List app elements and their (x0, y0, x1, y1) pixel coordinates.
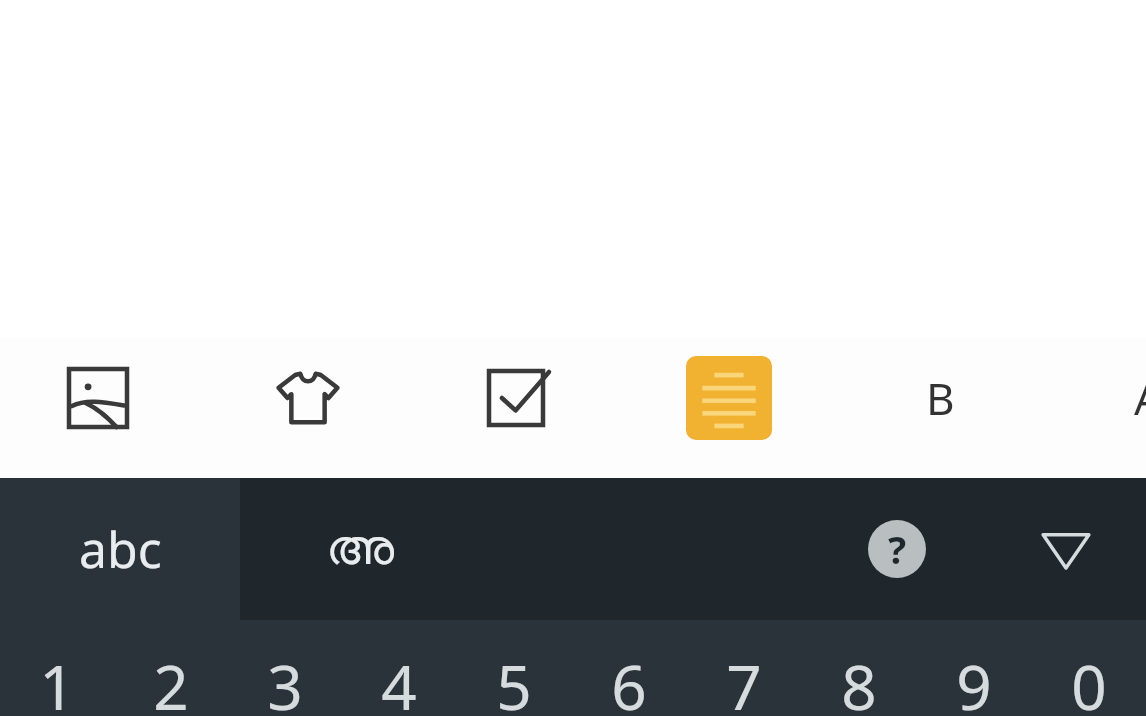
button[interactable]: 0 (1031, 620, 1146, 716)
staticText: abc (79, 515, 162, 583)
button[interactable]: 1 (0, 620, 114, 716)
staticText: 6 (611, 644, 647, 716)
staticText: 0 (1071, 644, 1107, 716)
button[interactable]: 3 (228, 620, 342, 716)
staticText: 4 (381, 644, 417, 716)
button[interactable]: 2 (114, 620, 228, 716)
button[interactable]: 5 (456, 620, 571, 716)
button[interactable]: abc (0, 478, 240, 620)
staticText: A (1134, 368, 1146, 428)
button[interactable]: 7 (686, 620, 801, 716)
staticText: 7 (726, 644, 762, 716)
button[interactable]: 8 (801, 620, 916, 716)
staticText: 3 (267, 644, 303, 716)
button[interactable]: 4 (342, 620, 456, 716)
button[interactable]: Checklist (466, 346, 570, 450)
staticText: 8 (841, 644, 877, 716)
button[interactable]: Stickers (256, 346, 360, 450)
button[interactable]: Hide keyboard (1034, 526, 1098, 574)
button[interactable]: അ (280, 478, 440, 620)
staticText: 9 (956, 644, 992, 716)
button[interactable]: 9 (916, 620, 1031, 716)
staticText: 1 (39, 644, 75, 716)
button[interactable]: Text note (677, 346, 781, 450)
staticText: ? (888, 523, 907, 575)
button[interactable]: 6 (571, 620, 686, 716)
button[interactable]: Bold (888, 346, 992, 450)
staticText: B (926, 368, 955, 428)
staticText: അ (326, 524, 394, 574)
button[interactable]: Help (868, 520, 926, 578)
button[interactable]: Insert image (46, 346, 150, 450)
staticText: 2 (153, 644, 189, 716)
button[interactable]: Font (1096, 346, 1146, 450)
staticText: 5 (496, 644, 532, 716)
